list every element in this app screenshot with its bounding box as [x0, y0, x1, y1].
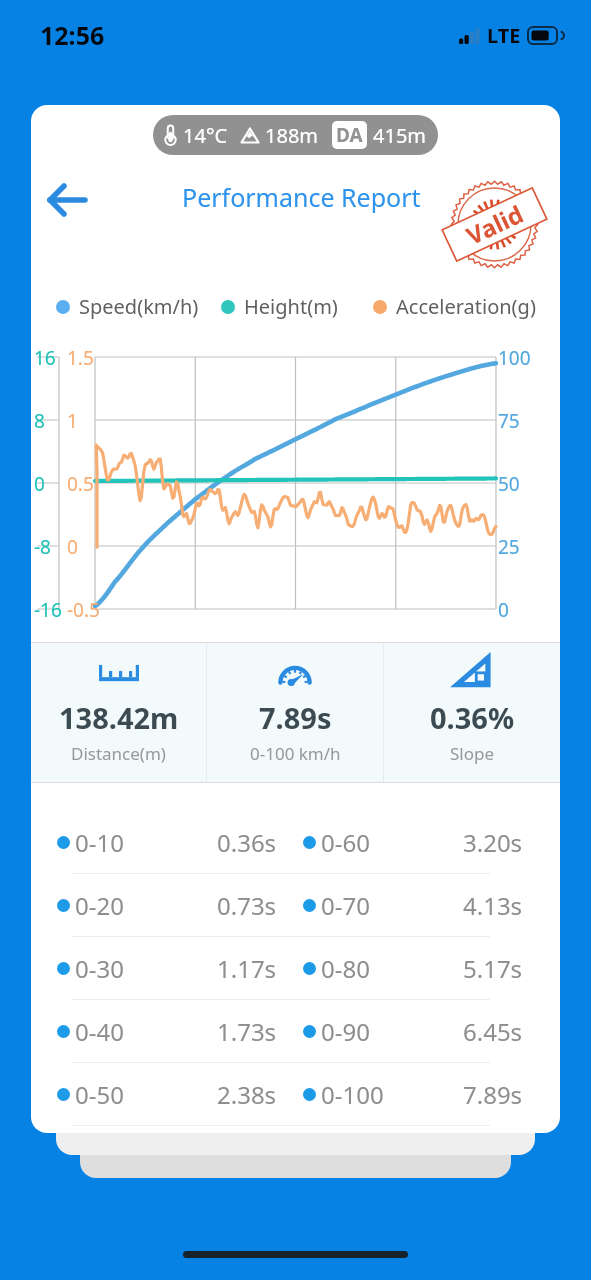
staticText: DA [336, 122, 363, 148]
staticText: 0-100 [321, 1078, 384, 1111]
staticText: 0 [498, 597, 509, 623]
staticText: 5.17s [463, 952, 523, 985]
staticText: Valid [461, 197, 528, 252]
staticText: 12:56 [40, 18, 105, 52]
staticText: Distance(m) [71, 742, 166, 765]
button[interactable]: 0.36% [384, 642, 560, 783]
staticText: 0.36% [430, 698, 515, 737]
staticText: Height(m) [244, 293, 338, 320]
staticText: -0.5 [67, 597, 100, 623]
staticText: 0-60 [321, 826, 370, 859]
staticText: 138.42m [59, 698, 179, 737]
staticText: Slope [450, 742, 495, 765]
staticText: Performance Report [182, 180, 421, 214]
staticText: 3.20s [463, 826, 523, 859]
staticText: 50 [498, 471, 520, 497]
staticText: 0.36s [217, 826, 277, 859]
staticText: LTE [487, 22, 521, 49]
button[interactable]: 0-20 [31, 874, 560, 936]
staticText: 0-50 [75, 1078, 124, 1111]
staticText: 0.73s [217, 889, 277, 922]
staticText: 1 [67, 408, 78, 434]
staticText: 1.73s [217, 1015, 277, 1048]
staticText: Speed(km/h) [79, 293, 199, 320]
staticText: 1.5 [67, 345, 94, 371]
button[interactable]: Back [39, 172, 95, 228]
staticText: 0-70 [321, 889, 370, 922]
staticText: 0-30 [75, 952, 124, 985]
staticText: 75 [498, 408, 520, 434]
staticText: Acceleration(g) [396, 293, 536, 320]
staticText: 0-90 [321, 1015, 370, 1048]
button[interactable]: 0-30 [31, 937, 560, 999]
staticText: 8 [34, 408, 45, 434]
staticText: 0-10 [75, 826, 124, 859]
staticText: 1.17s [217, 952, 277, 985]
staticText: 0-100 km/h [250, 742, 341, 765]
staticText: 188m [265, 122, 319, 149]
button[interactable]: 7.89s [207, 642, 383, 783]
staticText: 25 [498, 534, 520, 560]
button[interactable]: 0-10 [31, 811, 560, 873]
button[interactable]: 138.42m [31, 642, 206, 783]
staticText: 4.13s [463, 889, 523, 922]
staticText: 14°C [183, 122, 228, 149]
staticText: -16 [34, 597, 62, 623]
staticText: 100 [498, 345, 531, 371]
staticText: 415m [373, 122, 427, 149]
staticText: 0-80 [321, 952, 370, 985]
staticText: 0 [34, 471, 45, 497]
staticText: 0-20 [75, 889, 124, 922]
staticText: 2.38s [217, 1078, 277, 1111]
staticText: 16 [34, 345, 56, 371]
button[interactable]: 14°C [153, 115, 438, 155]
staticText: 0 [67, 534, 78, 560]
staticText: 7.89s [463, 1078, 523, 1111]
staticText: 6.45s [463, 1015, 523, 1048]
staticText: -8 [34, 534, 51, 560]
staticText: 0-40 [75, 1015, 124, 1048]
staticText: 7.89s [259, 698, 332, 737]
button[interactable]: 0-50 [31, 1063, 560, 1125]
button[interactable]: 0-40 [31, 1000, 560, 1062]
staticText: 0.5 [67, 471, 94, 497]
